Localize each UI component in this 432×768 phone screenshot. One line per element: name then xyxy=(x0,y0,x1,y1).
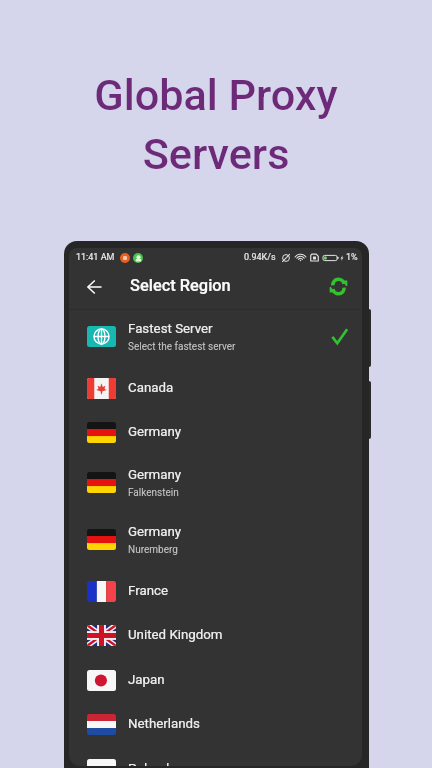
staticText: Germany xyxy=(128,424,182,440)
button[interactable]: Fastest Server xyxy=(69,308,362,365)
button[interactable]: Netherlands xyxy=(69,702,362,746)
staticText: Japan xyxy=(128,672,165,688)
staticText: Select Region xyxy=(130,276,231,295)
staticText: Nuremberg xyxy=(128,544,178,556)
button[interactable]: Germany xyxy=(69,410,362,454)
staticText: Canada xyxy=(128,380,174,396)
button[interactable]: United Kingdom xyxy=(69,613,362,657)
button[interactable]: Refresh xyxy=(322,270,355,303)
staticText: Global Proxy Servers xyxy=(94,70,338,179)
staticText: Select the fastest server xyxy=(128,341,236,353)
staticText: Germany xyxy=(128,467,182,483)
staticText: Netherlands xyxy=(128,716,200,732)
button[interactable]: Back xyxy=(75,268,113,306)
staticText: Fastest Server xyxy=(128,321,213,337)
staticText: Falkenstein xyxy=(128,487,179,499)
staticText: Germany xyxy=(128,524,182,540)
staticText: 11:41 AM xyxy=(76,252,115,263)
button[interactable]: Germany xyxy=(69,454,362,511)
button[interactable]: Canada xyxy=(69,366,362,410)
button[interactable]: Japan xyxy=(69,658,362,702)
staticText: 1% xyxy=(346,252,358,263)
button[interactable]: Poland xyxy=(69,747,362,766)
staticText: 0.94K/s xyxy=(244,252,276,263)
button[interactable]: France xyxy=(69,569,362,613)
staticText: United Kingdom xyxy=(128,627,223,643)
button[interactable]: Germany xyxy=(69,511,362,568)
staticText: France xyxy=(128,583,169,599)
staticText: Poland xyxy=(128,761,170,766)
